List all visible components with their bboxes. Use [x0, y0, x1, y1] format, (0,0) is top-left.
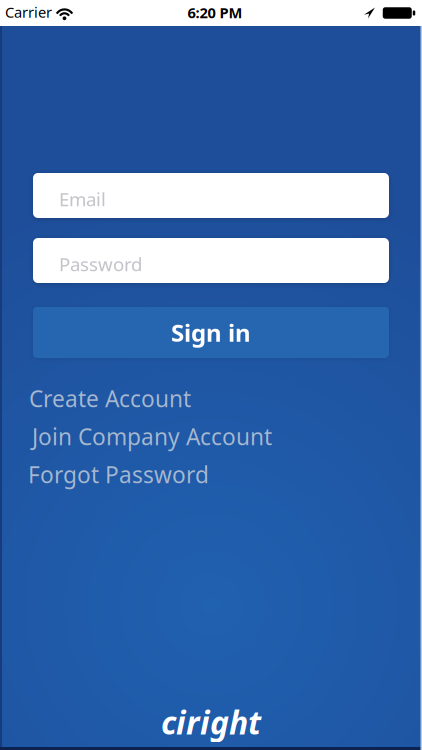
staticText: Join Company Account	[32, 421, 272, 452]
staticText: Email	[59, 187, 106, 211]
button[interactable]: Email	[33, 173, 389, 218]
staticText: 6:20 PM	[187, 3, 242, 22]
button[interactable]: Sign in	[33, 307, 389, 358]
button[interactable]: Forgot Password	[28, 459, 209, 490]
button[interactable]: Join Company Account	[32, 421, 272, 452]
button[interactable]: Create Account	[29, 383, 191, 414]
staticText: Sign in	[171, 317, 251, 348]
staticText: Create Account	[29, 383, 191, 414]
staticText: ciright	[161, 701, 261, 743]
staticText: Password	[59, 252, 142, 276]
staticText: Carrier	[5, 2, 52, 22]
staticText: Forgot Password	[28, 459, 209, 490]
button[interactable]: Password	[33, 238, 389, 283]
